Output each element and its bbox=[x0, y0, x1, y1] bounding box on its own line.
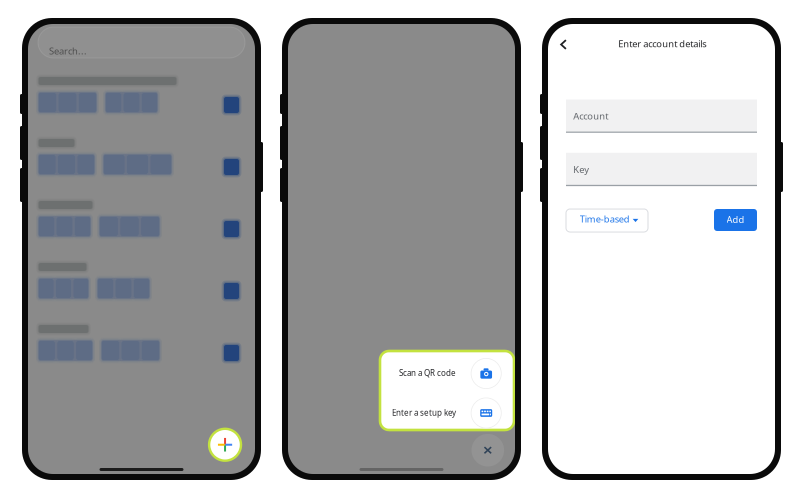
staticText: Time-based bbox=[580, 213, 630, 225]
button[interactable]: Close bbox=[471, 434, 504, 466]
staticText: Scan a QR code bbox=[399, 368, 456, 378]
staticText: Key bbox=[573, 163, 589, 176]
button[interactable]: Time-based bbox=[548, 24, 775, 474]
staticText: Account bbox=[573, 110, 608, 122]
button[interactable]: Add bbox=[548, 24, 775, 474]
button[interactable]: Add account bbox=[208, 428, 242, 462]
staticText: Add bbox=[726, 213, 744, 226]
staticText: Enter account details bbox=[618, 37, 706, 50]
button[interactable]: Scan a QR code bbox=[288, 24, 515, 474]
button[interactable]: Enter a setup key bbox=[288, 24, 515, 474]
button[interactable]: Back bbox=[548, 24, 775, 474]
staticText: Search... bbox=[49, 45, 87, 57]
staticText: Enter a setup key bbox=[392, 407, 456, 418]
